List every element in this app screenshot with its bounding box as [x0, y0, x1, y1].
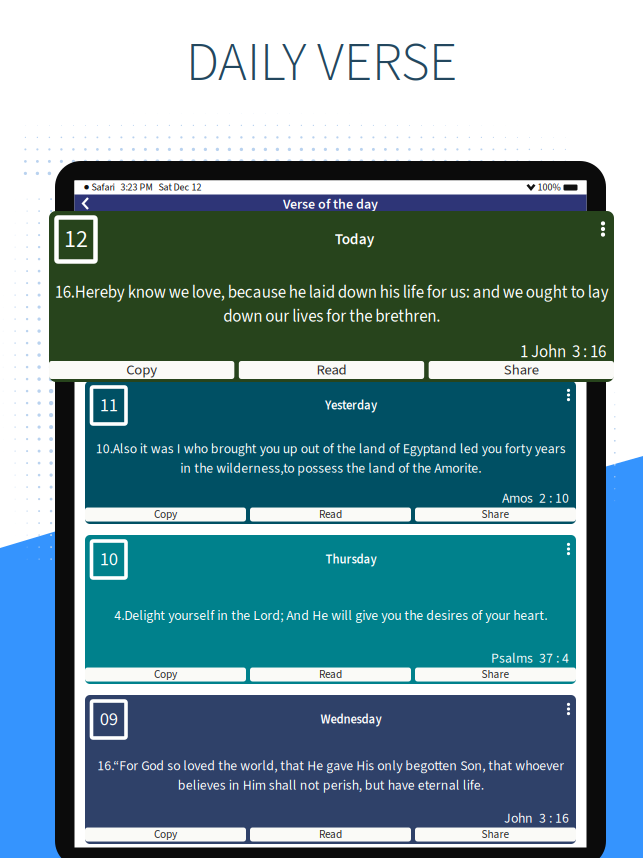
staticText: Psalms 37 : 4 — [491, 649, 569, 668]
button[interactable]: 10 — [91, 541, 126, 578]
staticText: Today — [335, 229, 375, 250]
staticText: 16.Hereby know we love, because he laid … — [54, 280, 608, 329]
button[interactable]: Read — [250, 507, 411, 521]
staticText: 100% — [537, 180, 560, 195]
staticText: Share — [481, 826, 509, 842]
button[interactable]: 12 — [56, 217, 95, 261]
button[interactable]: 09 — [91, 701, 126, 738]
staticText: 16.“For God so loved the world, that He … — [97, 756, 564, 795]
button[interactable]: More options — [563, 540, 574, 558]
staticText: Amos 2 : 10 — [502, 489, 569, 508]
button[interactable]: More options — [563, 700, 574, 718]
staticText: DAILY VERSE — [186, 24, 457, 102]
staticText: Read — [319, 666, 342, 682]
staticText: Read — [319, 826, 342, 842]
staticText: Thursday — [325, 550, 376, 568]
staticText: Copy — [154, 506, 177, 522]
button[interactable]: Copy — [85, 667, 246, 681]
staticText: 1 John 3 : 16 — [520, 340, 606, 364]
button[interactable]: Share — [415, 507, 576, 521]
staticText: 11 — [100, 392, 118, 419]
staticText: Share — [504, 360, 539, 380]
staticText: 10.Also it was I who brought you up out … — [95, 439, 565, 478]
button[interactable]: Share — [415, 827, 576, 841]
staticText: 12 — [64, 222, 88, 257]
button[interactable]: Share — [429, 361, 614, 379]
button[interactable]: Copy — [85, 507, 246, 521]
staticText: Wednesday — [320, 710, 381, 728]
button[interactable]: Read — [250, 667, 411, 681]
staticText: Copy — [154, 826, 177, 842]
staticText: Share — [481, 666, 509, 682]
button[interactable]: Read — [250, 827, 411, 841]
staticText: Copy — [154, 666, 177, 682]
staticText: John 3 : 16 — [504, 809, 569, 828]
button[interactable]: Back — [80, 194, 102, 214]
button[interactable]: More options — [597, 218, 608, 240]
staticText: Verse of the day — [283, 194, 378, 214]
staticText: Yesterday — [325, 396, 377, 414]
button[interactable]: Copy — [49, 361, 234, 379]
staticText: Read — [319, 506, 342, 522]
staticText: Copy — [126, 360, 157, 380]
staticText: 4.Delight yourself in the Lord; And He w… — [114, 606, 547, 626]
button[interactable]: Share — [415, 667, 576, 681]
staticText: Read — [316, 360, 346, 380]
staticText: Share — [481, 506, 509, 522]
button[interactable]: 11 — [91, 387, 126, 424]
staticText: 09 — [100, 706, 118, 733]
button[interactable]: Copy — [85, 827, 246, 841]
button[interactable]: Read — [239, 361, 424, 379]
staticText: 10 — [100, 546, 118, 573]
button[interactable]: More options — [563, 386, 574, 404]
staticText: ● Safari 3:23 PM Sat Dec 12 — [83, 180, 201, 195]
